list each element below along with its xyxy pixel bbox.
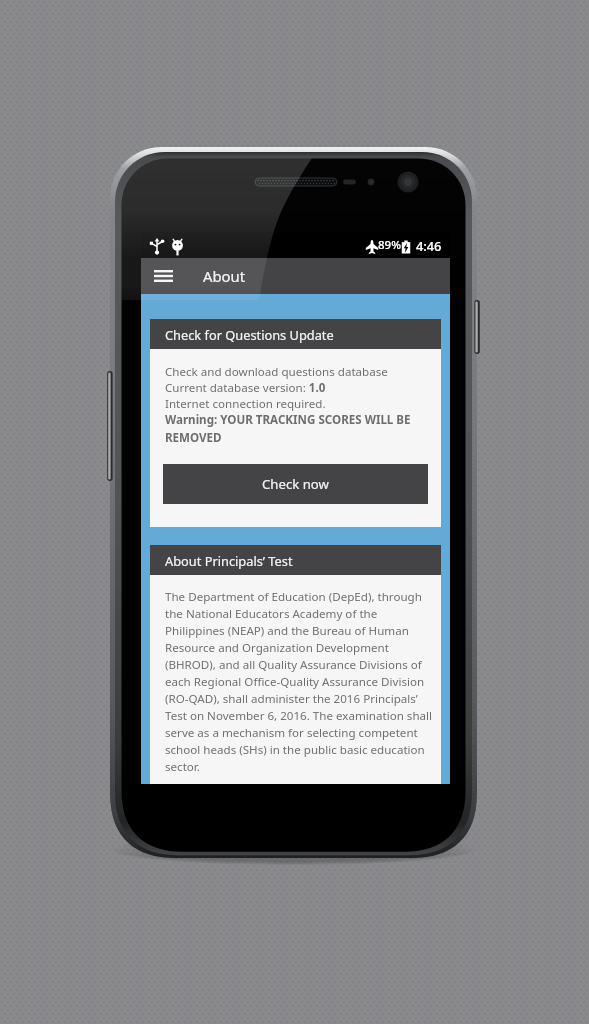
staticText: Current database version: 1.0: [165, 380, 326, 396]
staticText: The Department of Education (DepEd), thr…: [165, 589, 433, 772]
staticText: Check and download questions database: [165, 364, 388, 380]
button[interactable]: Open navigation drawer: [141, 258, 186, 294]
staticText: 89%: [378, 237, 401, 253]
button[interactable]: Check now: [163, 464, 428, 504]
staticText: Check now: [262, 475, 329, 493]
staticText: Internet connection required.: [165, 396, 326, 412]
staticText: 4:46: [416, 237, 442, 254]
staticText: About: [203, 266, 245, 286]
staticText: About Principals’ Test: [165, 552, 293, 569]
staticText: Check for Questions Update: [165, 326, 334, 343]
staticText: Warning: YOUR TRACKING SCORES WILL BE RE…: [165, 412, 431, 446]
